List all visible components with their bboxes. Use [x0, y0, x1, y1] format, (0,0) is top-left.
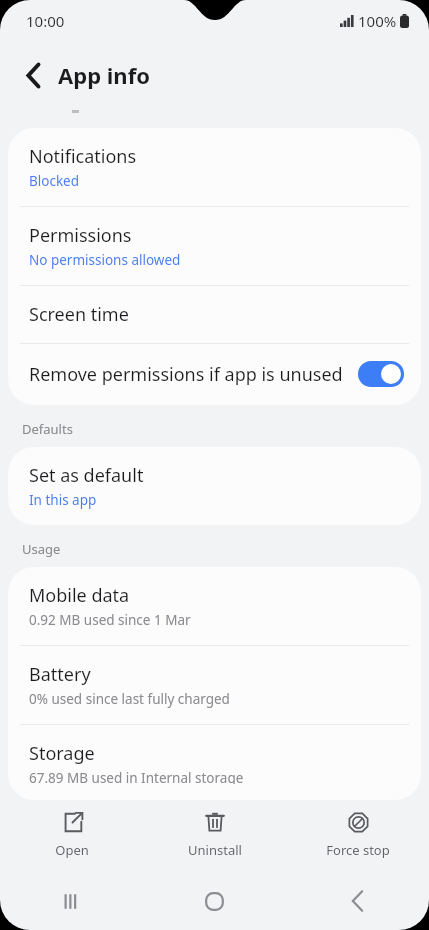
staticText: Battery — [29, 662, 91, 687]
staticText: 67.89 MB used in Internal storage — [29, 769, 244, 784]
button[interactable]: Notifications — [8, 128, 421, 206]
staticText: Set as default — [29, 463, 144, 488]
staticText: 0% used since last fully charged — [29, 690, 230, 708]
button[interactable]: Open — [0, 800, 143, 872]
staticText: 100% — [358, 11, 397, 31]
staticText: Remove permissions if app is unused — [29, 362, 350, 387]
staticText: Permissions — [29, 223, 132, 248]
staticText: 10:00 — [26, 11, 65, 31]
button[interactable]: Screen time — [8, 286, 421, 343]
staticText: Force stop — [326, 841, 390, 859]
staticText: Defaults — [22, 420, 73, 438]
staticText: No permissions allowed — [29, 251, 181, 269]
button[interactable]: Back — [286, 872, 429, 930]
button[interactable]: Back — [12, 53, 56, 97]
staticText: Uninstall — [188, 841, 242, 859]
button[interactable]: Set as default — [8, 447, 421, 525]
button[interactable]: Battery — [8, 646, 421, 724]
button[interactable]: Remove permissions if app is unused — [8, 344, 421, 405]
button[interactable]: Recents — [0, 872, 143, 930]
staticText: Open — [55, 841, 89, 859]
staticText: 0.92 MB used since 1 Mar — [29, 611, 191, 629]
button[interactable]: Uninstall — [143, 800, 286, 872]
button[interactable]: Home — [143, 872, 286, 930]
button[interactable]: Permissions — [8, 207, 421, 285]
staticText: Storage — [29, 741, 95, 766]
staticText: App info — [58, 60, 150, 90]
button[interactable]: Mobile data — [8, 567, 421, 645]
staticText: Notifications — [29, 144, 137, 169]
staticText: Usage — [22, 540, 61, 558]
staticText: Mobile data — [29, 583, 130, 608]
button[interactable]: Force stop — [286, 800, 429, 872]
staticText: In this app — [29, 491, 97, 509]
staticText: Screen time — [29, 302, 129, 327]
button[interactable]: Storage — [8, 725, 421, 800]
staticText: Blocked — [29, 172, 80, 190]
